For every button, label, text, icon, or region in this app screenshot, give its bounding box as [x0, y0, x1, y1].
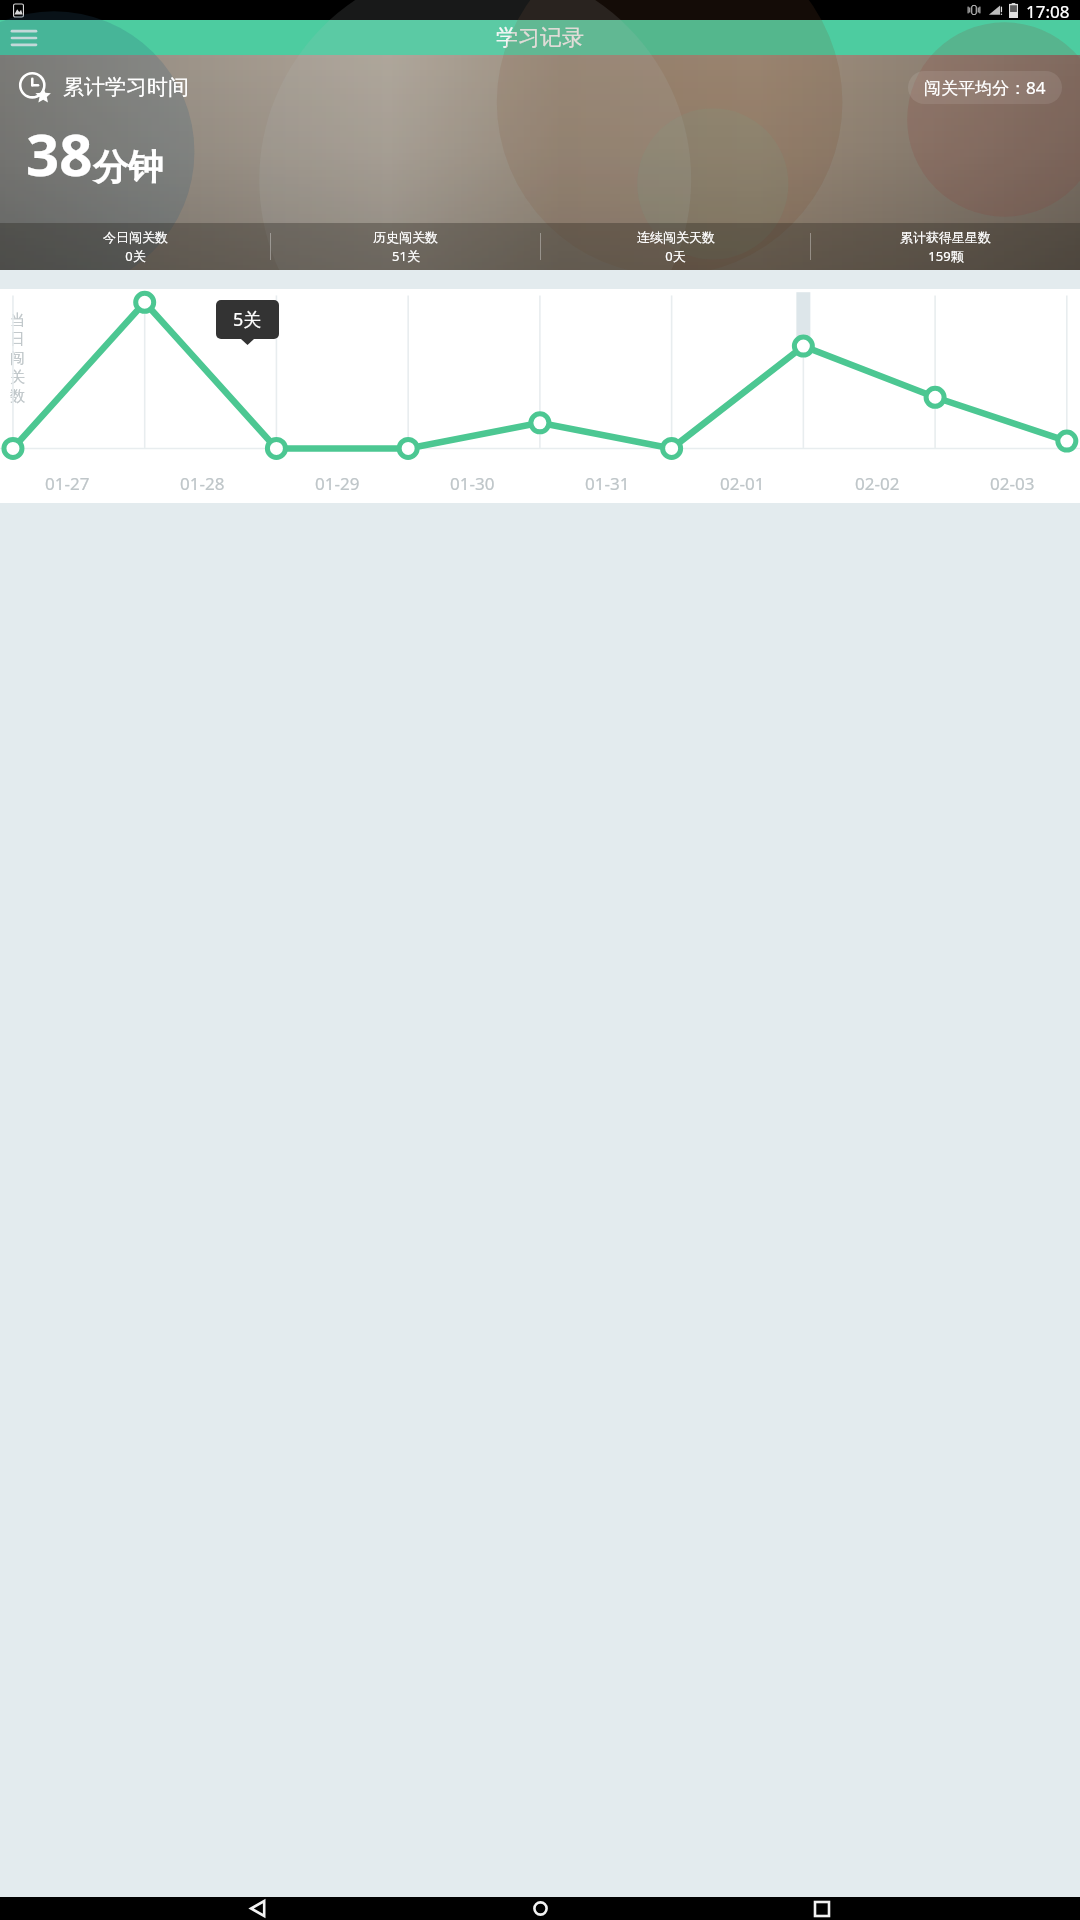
button[interactable]: Back [234, 1897, 282, 1920]
staticText: 17:08 [1026, 0, 1070, 20]
staticText: 当 [10, 311, 25, 330]
staticText: 日 [10, 330, 25, 349]
staticText: 02-01 [720, 472, 765, 495]
staticText: 今日闯关数 [103, 229, 168, 245]
staticText: 闯 [10, 349, 25, 368]
staticText: 5关 [233, 307, 262, 332]
button[interactable]: Home [516, 1897, 564, 1920]
button[interactable]: 今日闯关数 [0, 229, 270, 265]
staticText: 0天 [665, 247, 686, 265]
staticText: 01-28 [180, 472, 225, 495]
staticText: 01-29 [315, 472, 360, 495]
staticText: 02-02 [855, 472, 900, 495]
staticText: 关 [10, 368, 25, 387]
button[interactable]: 闯关平均分：84 [908, 71, 1062, 104]
button[interactable]: 5关 [216, 300, 279, 339]
button[interactable]: Recents [798, 1897, 846, 1920]
button[interactable]: 累计获得星星数 [811, 229, 1080, 265]
other: Study time [18, 70, 52, 104]
staticText: 闯关平均分：84 [924, 76, 1046, 99]
staticText: 38 [26, 114, 93, 193]
staticText: 连续闯关天数 [637, 229, 715, 245]
staticText: 01-30 [450, 472, 495, 495]
button[interactable]: Menu [4, 20, 44, 55]
staticText: 学习记录 [496, 24, 584, 52]
staticText: 累计获得星星数 [900, 229, 991, 245]
staticText: 02-03 [990, 472, 1035, 495]
button[interactable]: 连续闯关天数 [541, 229, 810, 265]
staticText: 0关 [125, 247, 146, 265]
staticText: 01-31 [585, 472, 630, 495]
staticText: 51关 [392, 247, 420, 265]
staticText: 历史闯关数 [373, 229, 438, 245]
staticText: 数 [10, 387, 25, 406]
staticText: 分钟 [93, 145, 163, 189]
button[interactable]: 历史闯关数 [271, 229, 540, 265]
staticText: 累计学习时间 [63, 74, 189, 100]
staticText: 159颗 [928, 247, 964, 265]
staticText: 01-27 [45, 472, 90, 495]
